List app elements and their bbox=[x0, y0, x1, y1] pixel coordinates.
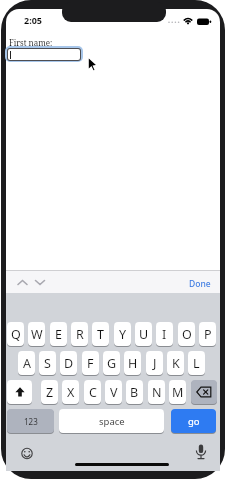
button[interactable]: B bbox=[126, 380, 143, 404]
staticText: First name: bbox=[9, 37, 53, 47]
button[interactable]: 123 bbox=[7, 409, 54, 433]
button[interactable]: P bbox=[199, 322, 216, 346]
staticText: B bbox=[130, 384, 139, 401]
staticText: O bbox=[182, 326, 192, 343]
button[interactable]: R bbox=[71, 322, 88, 346]
staticText: space bbox=[99, 415, 125, 428]
button[interactable]: M bbox=[169, 380, 186, 404]
button[interactable]: S bbox=[39, 351, 56, 375]
staticText: N bbox=[152, 384, 162, 401]
button[interactable]: V bbox=[105, 380, 122, 404]
button[interactable]: A bbox=[18, 351, 35, 375]
button[interactable]: C bbox=[84, 380, 101, 404]
button[interactable]: F bbox=[82, 351, 99, 375]
staticText: E bbox=[55, 326, 62, 343]
button[interactable] bbox=[191, 380, 217, 404]
staticText: W bbox=[31, 326, 43, 343]
staticText: U bbox=[139, 326, 149, 343]
button[interactable]: N bbox=[148, 380, 165, 404]
staticText: Z bbox=[46, 384, 54, 401]
staticText: go bbox=[188, 415, 200, 428]
staticText: J bbox=[153, 355, 157, 372]
button[interactable]: I bbox=[156, 322, 173, 346]
staticText: S bbox=[44, 355, 51, 372]
button[interactable]: X bbox=[62, 380, 79, 404]
staticText: Y bbox=[119, 326, 127, 343]
staticText: X bbox=[67, 384, 75, 401]
button[interactable]: Y bbox=[114, 322, 131, 346]
staticText: D bbox=[64, 355, 74, 372]
button[interactable]: W bbox=[28, 322, 45, 346]
button[interactable]: U bbox=[135, 322, 152, 346]
button[interactable]: O bbox=[178, 322, 195, 346]
button[interactable]: E bbox=[50, 322, 67, 346]
staticText: M bbox=[172, 384, 184, 401]
button[interactable]: J bbox=[146, 351, 163, 375]
button[interactable]: space bbox=[59, 409, 164, 433]
staticText: R bbox=[76, 326, 84, 343]
staticText: C bbox=[89, 384, 97, 401]
button[interactable]: K bbox=[167, 351, 184, 375]
staticText: K bbox=[172, 355, 180, 372]
button[interactable]: T bbox=[92, 322, 109, 346]
button[interactable] bbox=[6, 293, 220, 471]
button[interactable]: Q bbox=[7, 322, 24, 346]
button[interactable]: L bbox=[188, 351, 205, 375]
button[interactable]: Z bbox=[41, 380, 58, 404]
staticText: V bbox=[110, 384, 118, 401]
button[interactable]: G bbox=[103, 351, 120, 375]
staticText: T bbox=[97, 326, 104, 343]
staticText: Q bbox=[11, 326, 21, 343]
button[interactable]: Done bbox=[186, 278, 214, 290]
staticText: L bbox=[193, 355, 200, 372]
button[interactable]: H bbox=[124, 351, 141, 375]
staticText: I bbox=[162, 326, 167, 343]
staticText: 2:05 bbox=[24, 14, 42, 25]
staticText: A bbox=[23, 355, 31, 372]
staticText: H bbox=[128, 355, 138, 372]
staticText: Done bbox=[189, 278, 211, 290]
staticText: P bbox=[204, 326, 212, 343]
button[interactable] bbox=[8, 49, 80, 60]
button[interactable]: D bbox=[60, 351, 77, 375]
staticText: G bbox=[107, 355, 117, 372]
button[interactable]: go bbox=[171, 409, 216, 433]
staticText: F bbox=[87, 355, 94, 372]
staticText: 123 bbox=[24, 416, 38, 427]
button[interactable] bbox=[7, 380, 32, 404]
